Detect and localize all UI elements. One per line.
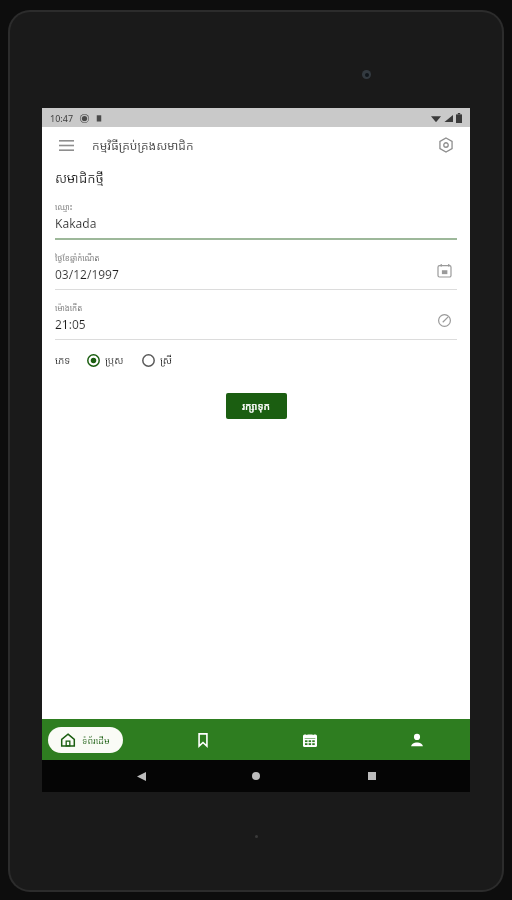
staticText: ប្រុស bbox=[105, 353, 124, 367]
button[interactable]: Bookmarks bbox=[149, 719, 256, 760]
staticText: សមាជិកថ្មី bbox=[55, 169, 104, 187]
button[interactable]: រក្សាទុក bbox=[226, 393, 287, 419]
staticText: ឈ្មោះ bbox=[55, 201, 73, 212]
button[interactable]: ឈ្មោះ bbox=[55, 201, 457, 240]
button[interactable]: ប្រុស bbox=[87, 353, 124, 367]
button[interactable]: ស្រី bbox=[142, 353, 173, 367]
staticText: ស្រី bbox=[160, 353, 173, 367]
staticText: 03/12/1997 bbox=[55, 266, 119, 282]
staticText: ទំព័រដើម bbox=[82, 734, 110, 746]
staticText: Kakada bbox=[55, 215, 97, 231]
button[interactable]: Pick date bbox=[433, 259, 455, 281]
staticText: 21:05 bbox=[55, 316, 86, 332]
button[interactable]: ថ្ងៃខែឆ្នាំកំណើត bbox=[55, 252, 457, 290]
staticText: ភេទ bbox=[55, 353, 71, 367]
button[interactable]: Recents bbox=[355, 760, 389, 792]
button[interactable]: Profile bbox=[363, 719, 470, 760]
button[interactable]: Home bbox=[239, 760, 273, 792]
button[interactable]: ម៉ោងកើត bbox=[55, 302, 457, 340]
button[interactable]: ទំព័រដើម bbox=[48, 727, 123, 753]
button[interactable]: Settings bbox=[432, 131, 460, 159]
button[interactable]: Menu bbox=[52, 131, 80, 159]
button[interactable]: Calendar bbox=[256, 719, 363, 760]
staticText: 10:47 bbox=[50, 112, 74, 124]
staticText: រក្សាទុក bbox=[242, 399, 271, 413]
staticText: ថ្ងៃខែឆ្នាំកំណើត bbox=[55, 252, 100, 263]
button[interactable]: Back bbox=[124, 760, 158, 792]
button[interactable]: Pick time bbox=[433, 309, 455, 331]
staticText: កម្មវិធីគ្រប់គ្រងសមាជិក bbox=[92, 137, 194, 153]
staticText: ម៉ោងកើត bbox=[55, 302, 83, 313]
